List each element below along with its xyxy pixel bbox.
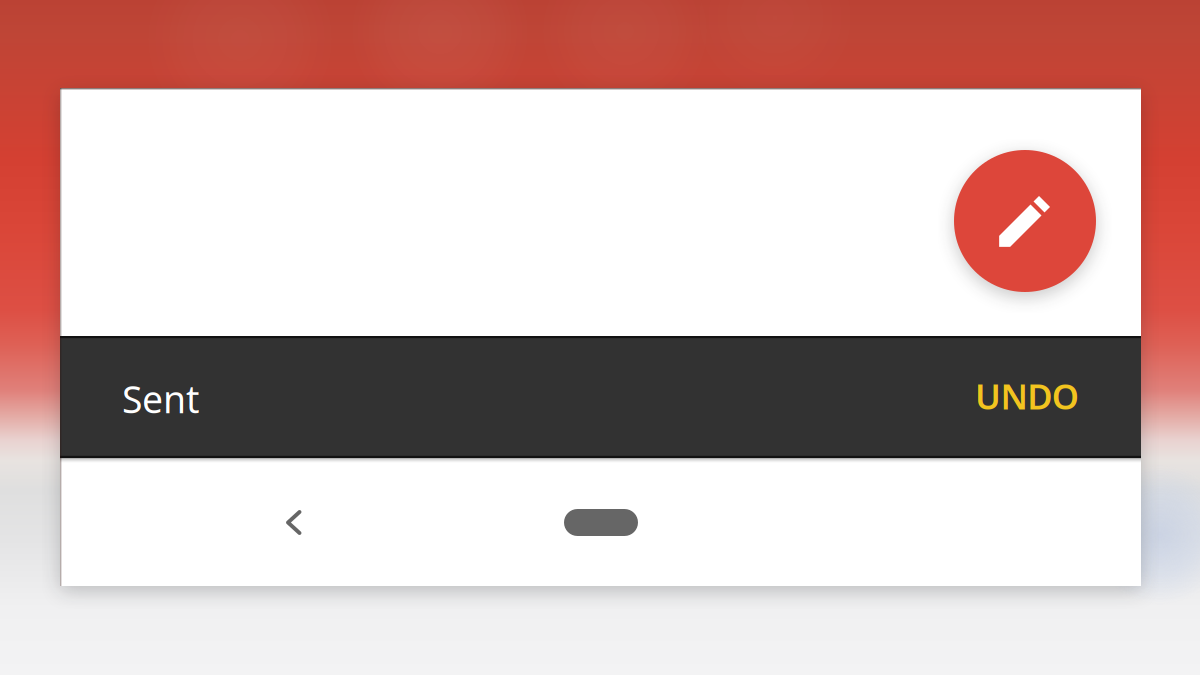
staticText: UNDO [975,373,1079,419]
button[interactable]: Compose [954,150,1096,292]
button[interactable]: UNDO [959,355,1095,437]
button[interactable]: Home [540,487,662,558]
button[interactable]: Back [264,488,323,557]
staticText: Sent [122,374,199,424]
